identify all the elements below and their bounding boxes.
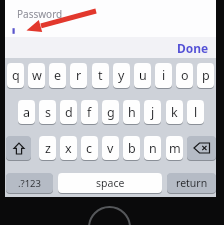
staticText: y — [118, 67, 125, 84]
button[interactable]: .?123 — [6, 173, 53, 193]
staticText: space — [96, 176, 125, 190]
staticText: return — [176, 176, 208, 190]
button[interactable]: y — [113, 63, 130, 88]
button[interactable]: s — [39, 100, 56, 124]
button[interactable]: b — [123, 136, 140, 160]
staticText: o — [181, 67, 189, 84]
button[interactable]: p — [197, 63, 214, 88]
staticText: c — [86, 140, 93, 157]
button[interactable] — [6, 136, 31, 160]
staticText: i — [162, 67, 166, 84]
button[interactable]: n — [144, 136, 161, 160]
staticText: d — [65, 104, 73, 121]
button[interactable]: h — [123, 100, 140, 124]
staticText: m — [169, 140, 181, 157]
staticText: a — [23, 104, 31, 121]
staticText: k — [171, 104, 178, 121]
button[interactable]: Done — [177, 40, 209, 56]
staticText: h — [128, 104, 136, 121]
button[interactable]: return — [167, 173, 216, 193]
button[interactable]: r — [70, 63, 87, 88]
staticText: u — [139, 67, 147, 84]
staticText: Password — [17, 7, 63, 21]
staticText: Done — [177, 40, 209, 56]
staticText: q — [12, 67, 20, 84]
staticText: v — [107, 140, 114, 157]
button[interactable] — [187, 136, 216, 160]
button[interactable]: v — [102, 136, 119, 160]
staticText: b — [128, 140, 136, 157]
staticText: g — [107, 104, 115, 121]
button[interactable]: g — [102, 100, 119, 124]
staticText: .?123 — [18, 177, 41, 190]
staticText: p — [202, 67, 210, 84]
button[interactable]: t — [92, 63, 109, 88]
button[interactable]: m — [166, 136, 183, 160]
staticText: l — [194, 104, 198, 121]
button[interactable]: w — [28, 63, 45, 88]
button[interactable]: i — [155, 63, 172, 88]
button[interactable]: a — [18, 100, 35, 124]
button[interactable]: c — [81, 136, 98, 160]
staticText: z — [45, 140, 51, 157]
button[interactable]: u — [134, 63, 151, 88]
staticText: f — [87, 104, 92, 121]
button[interactable]: j — [144, 100, 161, 124]
button[interactable]: l — [187, 100, 204, 124]
staticText: r — [76, 67, 82, 84]
staticText: j — [151, 104, 155, 121]
staticText: s — [45, 104, 51, 121]
staticText: e — [54, 67, 62, 84]
staticText: t — [98, 67, 103, 84]
button[interactable]: f — [81, 100, 98, 124]
staticText: x — [65, 140, 72, 157]
button[interactable]: o — [176, 63, 193, 88]
button[interactable]: z — [39, 136, 56, 160]
button[interactable]: x — [60, 136, 77, 160]
button[interactable]: k — [166, 100, 183, 124]
staticText: w — [32, 67, 42, 84]
staticText: n — [149, 140, 157, 157]
button[interactable]: d — [60, 100, 77, 124]
button[interactable]: q — [7, 63, 24, 88]
button[interactable]: space — [58, 173, 162, 193]
button[interactable]: e — [49, 63, 66, 88]
